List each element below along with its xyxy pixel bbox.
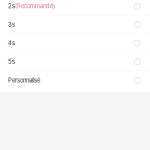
button[interactable]: 2s	[0, 0, 150, 16]
staticText: 4s	[8, 40, 15, 47]
button[interactable]: 4s	[0, 34, 150, 53]
button[interactable]: Personnalisé	[0, 71, 150, 91]
staticText: Personnalisé	[8, 77, 40, 84]
staticText: 3s	[8, 21, 15, 28]
staticText: (Recommandé)	[15, 3, 55, 10]
button[interactable]: 5s	[0, 53, 150, 71]
button[interactable]: 3s	[0, 16, 150, 34]
staticText: 2s	[8, 3, 15, 10]
staticText: 5s	[8, 58, 15, 65]
